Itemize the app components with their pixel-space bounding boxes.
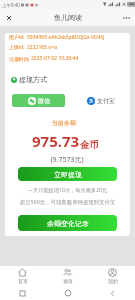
staticText: 上午9:40 — [2, 2, 20, 8]
staticText: 用户id: — [9, 34, 25, 41]
staticText: 5934365 oAh2sk5pKOOJ2a-0O4Q — [27, 34, 105, 41]
staticText: 注册时间 — [9, 56, 29, 62]
staticText: 超过500元，可找客服单独提现到支付宝 — [5, 198, 130, 205]
button[interactable]: More options — [120, 12, 132, 24]
staticText: 微信 — [38, 97, 50, 105]
button[interactable]: 支付宝 — [74, 94, 127, 107]
staticText: 一天只能提现10次，每次最多20元 — [5, 186, 130, 193]
button[interactable]: Close — [3, 12, 15, 24]
staticText: 邀请 — [63, 278, 73, 284]
button[interactable]: 微信 — [12, 94, 65, 107]
staticText: 立即提现 — [54, 170, 82, 179]
other: Home — [65, 290, 71, 296]
other: Back — [110, 291, 115, 296]
button[interactable]: 立即提现 — [18, 167, 117, 181]
staticText: 支付宝 — [97, 97, 115, 105]
other: Recents — [20, 291, 25, 296]
staticText: 上级id: — [9, 44, 25, 51]
staticText: 2025-07-02 10:29:44 — [31, 55, 79, 62]
staticText: 我的 — [108, 278, 118, 284]
staticText: 提现方式 — [19, 75, 47, 84]
button[interactable]: 余额变化记录 — [18, 215, 117, 231]
staticText: 当前余额 — [0, 119, 128, 127]
button[interactable]: 首页 — [0, 266, 45, 286]
staticText: 余额变化记录 — [47, 219, 89, 228]
staticText: 首页 — [18, 278, 28, 284]
staticText: 2222165 o^a — [27, 44, 58, 51]
staticText: (9.7573元) — [3, 155, 131, 165]
button[interactable]: 我的 — [90, 266, 135, 286]
staticText: 975.73 — [32, 131, 80, 151]
staticText: 金币 — [80, 139, 99, 151]
button[interactable]: 邀请 — [45, 266, 90, 286]
staticText: 鱼儿阅读 — [54, 13, 82, 22]
